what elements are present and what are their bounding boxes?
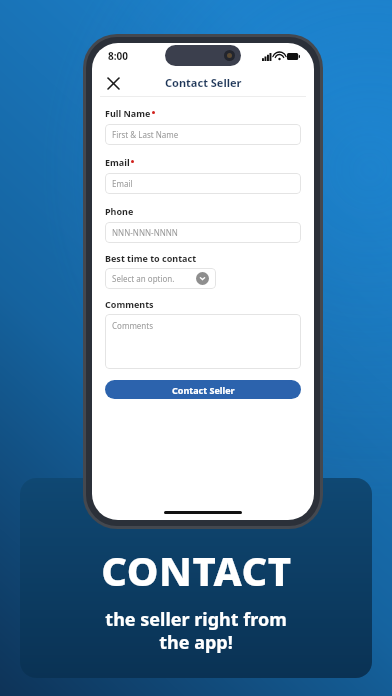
button[interactable]: Close (102, 72, 124, 94)
staticText: NNN-NNN-NNNN (112, 227, 294, 238)
button[interactable]: NNN-NNN-NNNN (105, 222, 301, 243)
staticText: Phone (105, 205, 134, 217)
button[interactable]: Email (105, 173, 301, 194)
staticText: Email (112, 178, 294, 189)
staticText: Comments (105, 298, 154, 310)
button[interactable]: Select an option. (105, 268, 216, 289)
staticText: Contact Seller (165, 75, 242, 90)
staticText: Best time to contact (105, 252, 197, 264)
staticText: Comments (112, 320, 294, 331)
staticText: Full Name (105, 107, 151, 119)
staticText: 8:00 (108, 49, 128, 63)
staticText: Contact Seller (172, 384, 235, 396)
staticText: Email (105, 156, 130, 168)
staticText: CONTACT (101, 543, 292, 597)
button[interactable]: First & Last Name (105, 124, 301, 145)
button[interactable]: Comments (105, 314, 301, 369)
staticText: Select an option. (112, 273, 196, 284)
button[interactable]: Contact Seller (105, 380, 301, 399)
staticText: First & Last Name (112, 129, 294, 140)
staticText: the seller right from the app! (105, 607, 287, 654)
